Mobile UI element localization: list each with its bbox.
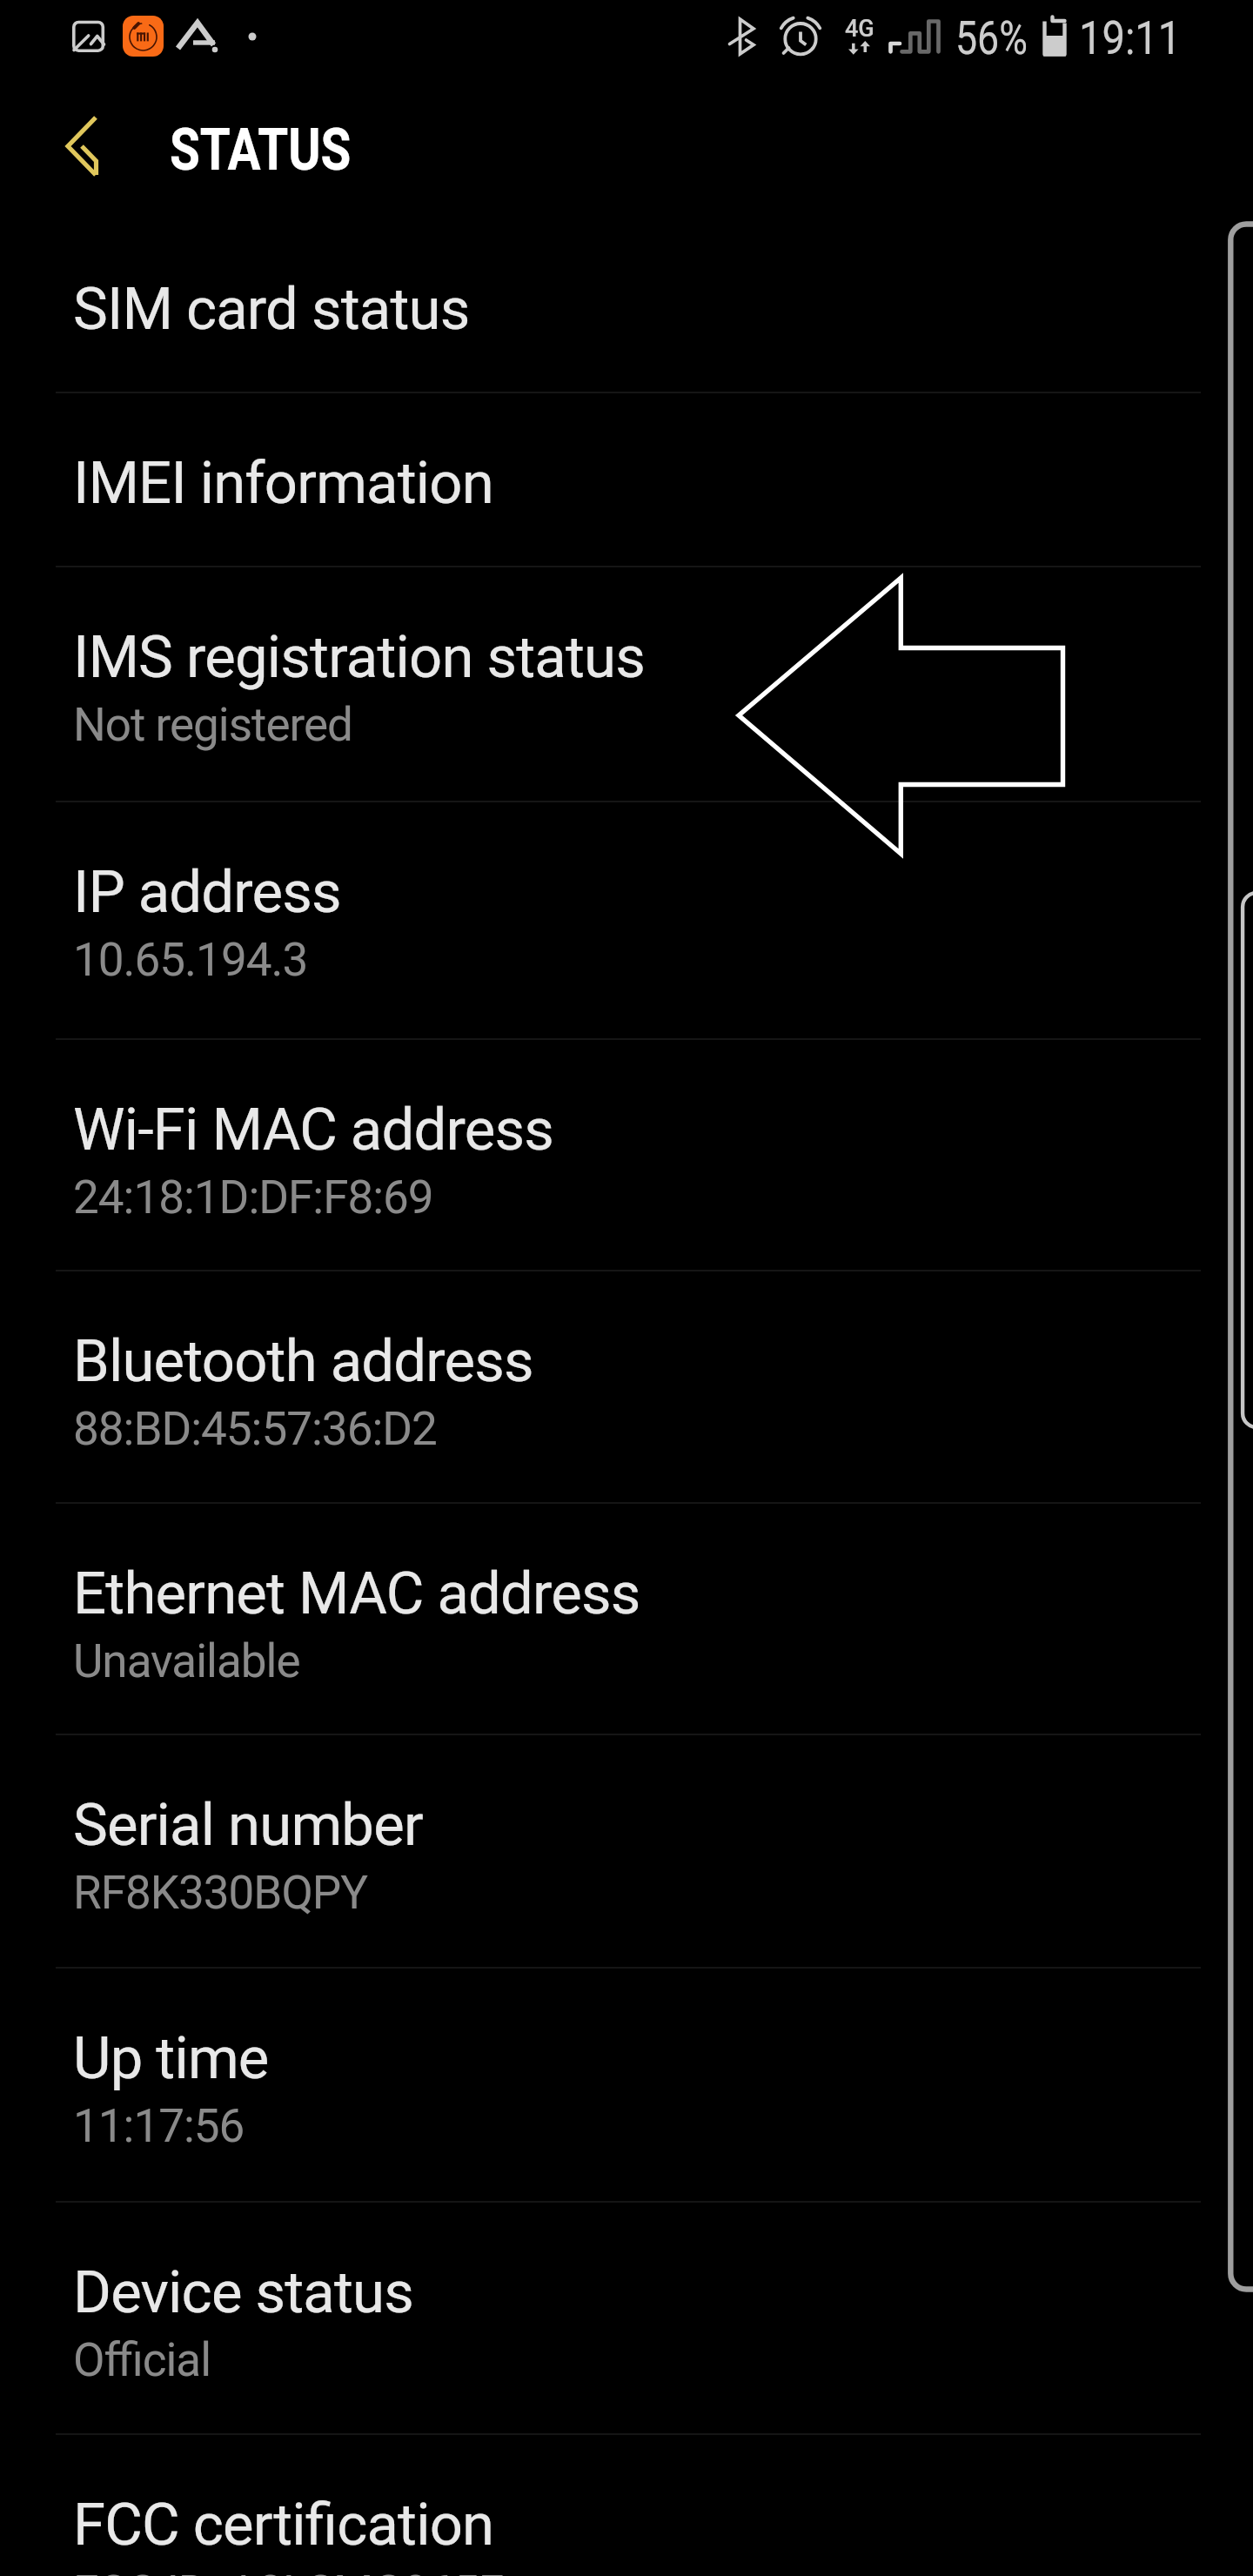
staticText: Not registered (73, 698, 353, 752)
button[interactable]: IMEI information (0, 393, 1253, 567)
staticText: 19:11 (1079, 11, 1181, 65)
staticText: IMEI information (73, 449, 493, 518)
staticText: 4G (845, 15, 874, 43)
staticText: IP address (73, 858, 341, 927)
staticText: 24:18:1D:DF:F8:69 (73, 1171, 433, 1224)
button[interactable]: Wi-Fi MAC address (0, 1040, 1253, 1271)
staticText: Up time (73, 2024, 269, 2093)
staticText: 56% (955, 11, 1028, 65)
button[interactable]: SIM card status (0, 219, 1253, 393)
staticText: 11:17:56 (73, 2099, 245, 2153)
staticText: RF8K330BQPY (73, 1866, 368, 1920)
button[interactable]: IP address (0, 802, 1253, 1040)
staticText: Ethernet MAC address (73, 1560, 640, 1628)
staticText: SIM card status (73, 275, 470, 344)
staticText: 10.65.194.3 (73, 933, 308, 987)
staticText: 88:BD:45:57:36:D2 (73, 1402, 437, 1456)
button[interactable]: IMS registration status (0, 567, 1253, 802)
button[interactable]: Up time (0, 1969, 1253, 2203)
staticText: Unavailable (73, 1634, 300, 1688)
button[interactable]: Serial number (0, 1735, 1253, 1969)
button[interactable]: Bluetooth address (0, 1271, 1253, 1504)
button[interactable]: FCC certification (0, 2435, 1253, 2576)
button[interactable]: Device status (0, 2203, 1253, 2435)
button[interactable]: Navigate up (35, 94, 131, 190)
staticText: Device status (73, 2258, 414, 2327)
staticText: Wi-Fi MAC address (73, 1096, 554, 1164)
staticText: IMS registration status (73, 623, 645, 692)
staticText: Serial number (73, 1791, 423, 1860)
staticText: FCC certification (73, 2491, 494, 2559)
staticText: Official (73, 2333, 211, 2387)
staticText: FCC ID: A3LSMG965F (73, 2566, 504, 2576)
staticText: Bluetooth address (73, 1327, 533, 1396)
staticText: STATUS (170, 116, 351, 184)
button[interactable]: Ethernet MAC address (0, 1504, 1253, 1735)
